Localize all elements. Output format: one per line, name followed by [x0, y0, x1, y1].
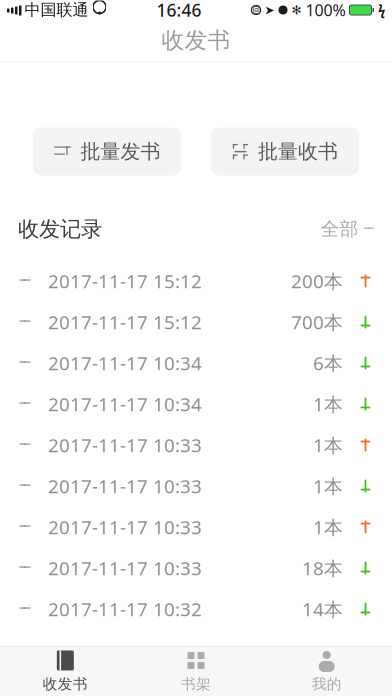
button[interactable]: 批量收书 — [211, 128, 359, 176]
button[interactable]: 批量发书 — [33, 128, 181, 176]
staticText: 700本 — [291, 310, 343, 334]
button[interactable]: 2017-11-17 10:34 — [0, 383, 392, 424]
staticText: 2017-11-17 15:12 — [48, 269, 202, 293]
staticText: 我的 — [312, 675, 342, 693]
staticText: ➤ — [264, 3, 274, 17]
button[interactable]: 全部 — [311, 212, 374, 246]
staticText: 1本 — [313, 392, 343, 416]
button[interactable]: 2017-11-17 10:34 — [0, 342, 392, 383]
staticText: 中国联通 — [24, 0, 88, 20]
staticText: 全部 — [321, 218, 359, 240]
staticText: 14本 — [302, 597, 343, 621]
staticText: 2017-11-17 10:34 — [48, 392, 202, 416]
button[interactable]: 2017-11-17 15:12 — [0, 301, 392, 342]
staticText: ✻ — [291, 3, 301, 17]
button[interactable]: 我的 — [261, 647, 392, 696]
staticText: 16:46 — [156, 0, 201, 21]
button[interactable]: 收发书 — [0, 647, 131, 696]
staticText: 收发书 — [161, 27, 230, 54]
button[interactable]: 书架 — [131, 647, 261, 696]
staticText: 收发书 — [43, 675, 88, 693]
button[interactable]: 2017-11-17 10:33 — [0, 424, 392, 465]
button[interactable]: 2017-11-17 15:12 — [0, 260, 392, 301]
staticText: 收发记录 — [18, 216, 102, 242]
button[interactable]: 2017-11-17 10:33 — [0, 465, 392, 506]
staticText: 1本 — [313, 433, 343, 457]
button[interactable]: 2017-11-17 10:33 — [0, 547, 392, 588]
staticText: 2017-11-17 10:32 — [48, 597, 202, 621]
button[interactable]: 2017-11-17 10:33 — [0, 506, 392, 547]
staticText: 2017-11-17 15:12 — [48, 310, 202, 334]
staticText: 2017-11-17 10:33 — [48, 474, 202, 498]
staticText: 2017-11-17 10:33 — [48, 515, 202, 539]
staticText: 6本 — [313, 351, 343, 375]
staticText: 批量收书 — [258, 139, 338, 164]
staticText: 1本 — [313, 474, 343, 498]
staticText: 100% — [305, 0, 345, 21]
staticText: 2017-11-17 10:33 — [48, 433, 202, 457]
staticText: 2017-11-17 10:33 — [48, 556, 202, 580]
staticText: ϟ — [378, 1, 385, 19]
staticText: 批量发书 — [80, 139, 160, 164]
staticText: @ — [252, 5, 259, 15]
staticText: 2017-11-17 10:34 — [48, 351, 202, 375]
staticText: 1本 — [313, 515, 343, 539]
staticText: 200本 — [291, 269, 343, 293]
button[interactable]: 2017-11-17 10:32 — [0, 588, 392, 629]
staticText: 18本 — [302, 556, 343, 580]
staticText: 书架 — [181, 675, 211, 693]
